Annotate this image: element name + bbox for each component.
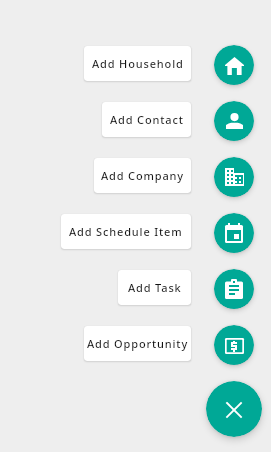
staticText: Add Company bbox=[101, 168, 184, 183]
staticText: Add Household bbox=[92, 56, 184, 71]
button[interactable]: Add Opportunity bbox=[214, 325, 254, 365]
button[interactable]: Add Schedule Item bbox=[214, 213, 254, 253]
button[interactable]: Add Task bbox=[118, 270, 191, 305]
button[interactable]: Add Household bbox=[84, 46, 191, 81]
staticText: Add Opportunity bbox=[87, 336, 189, 351]
button[interactable]: Add Schedule Item bbox=[61, 214, 191, 249]
button[interactable]: Add Company bbox=[94, 158, 191, 193]
button[interactable]: Add Contact bbox=[102, 102, 191, 137]
staticText: Add Schedule Item bbox=[69, 224, 183, 239]
staticText: Add Task bbox=[128, 280, 182, 295]
button[interactable]: Add Contact bbox=[214, 101, 254, 141]
button[interactable]: Add Company bbox=[214, 157, 254, 197]
button[interactable]: Add Task bbox=[214, 269, 254, 309]
staticText: Add Contact bbox=[110, 112, 184, 127]
button[interactable]: Close menu bbox=[206, 381, 262, 437]
button[interactable]: Add Household bbox=[214, 45, 254, 85]
button[interactable]: Add Opportunity bbox=[84, 326, 191, 361]
